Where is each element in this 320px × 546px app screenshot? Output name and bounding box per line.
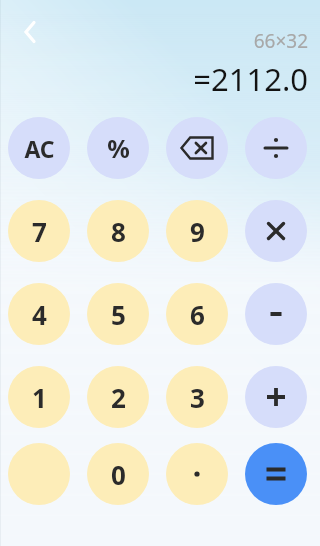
staticText: 66×32 (253, 28, 308, 54)
button[interactable]: 3 (166, 366, 228, 428)
button[interactable]: 8 (87, 200, 149, 262)
button[interactable]: 6 (166, 283, 228, 345)
button[interactable]: Multiply (245, 200, 307, 262)
staticText: 6 (190, 297, 205, 332)
button[interactable]: 5 (87, 283, 149, 345)
staticText: AC (24, 133, 55, 164)
staticText: 3 (190, 380, 205, 415)
button[interactable]: 2 (87, 366, 149, 428)
button[interactable]: Blank (8, 443, 70, 505)
staticText: 8 (111, 214, 126, 249)
button[interactable]: Minus (245, 283, 307, 345)
button[interactable]: 4 (8, 283, 70, 345)
staticText: =2112.0 (193, 58, 308, 100)
staticText: 7 (32, 214, 47, 249)
button[interactable]: % (87, 117, 149, 179)
button[interactable]: 7 (8, 200, 70, 262)
button[interactable]: Back (6, 8, 54, 56)
button[interactable]: 0 (87, 443, 149, 505)
button[interactable]: Plus (245, 366, 307, 428)
button[interactable]: Equals (245, 443, 307, 505)
staticText: 5 (111, 297, 126, 332)
button[interactable]: AC (8, 117, 70, 179)
button[interactable]: Divide (245, 117, 307, 179)
button[interactable]: 1 (8, 366, 70, 428)
staticText: 1 (32, 380, 47, 415)
staticText: 0 (111, 457, 126, 492)
button[interactable]: 9 (166, 200, 228, 262)
button[interactable]: Decimal point (166, 443, 228, 505)
staticText: % (107, 131, 130, 165)
staticText: 9 (190, 214, 205, 249)
staticText: 2 (111, 380, 126, 415)
button[interactable]: Backspace (166, 117, 228, 179)
staticText: 4 (32, 297, 47, 332)
